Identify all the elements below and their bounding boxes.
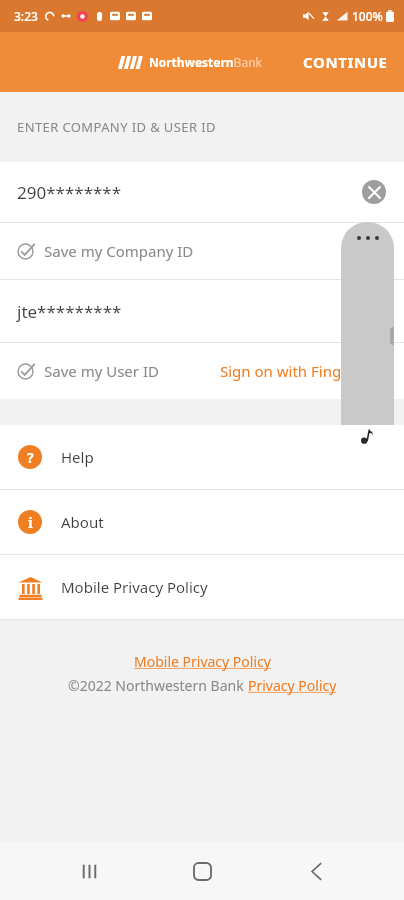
button[interactable]: i: [0, 490, 404, 554]
button[interactable]: Privacy Policy: [248, 676, 337, 695]
button[interactable]: Edge panel handle: [341, 222, 394, 425]
button[interactable]: Home: [177, 846, 227, 896]
staticText: ©2022 Northwestern Bank: [68, 676, 248, 695]
button[interactable]: Mobile Privacy Policy: [0, 555, 404, 619]
button[interactable]: Mobile Privacy Policy: [126, 650, 279, 673]
staticText: Mobile Privacy Policy: [61, 577, 208, 597]
staticText: NorthwesternBank: [149, 54, 262, 70]
button[interactable]: Save my Company ID: [0, 233, 206, 269]
staticText: About: [61, 512, 104, 532]
staticText: Save my Company ID: [44, 241, 194, 261]
staticText: Sign on with Fingerprint: [220, 361, 390, 381]
staticText: jte*********: [17, 300, 122, 323]
staticText: ENTER COMPANY ID & USER ID: [17, 118, 216, 136]
staticText: Save my User ID: [44, 361, 159, 381]
button[interactable]: Recents: [64, 846, 114, 896]
staticText: i: [28, 513, 33, 532]
button[interactable]: jte*********: [0, 280, 404, 342]
staticText: 100%: [352, 8, 383, 24]
staticText: 290********: [17, 181, 122, 204]
button[interactable]: Back: [291, 846, 341, 896]
staticText: Mobile Privacy Policy: [134, 652, 271, 671]
button[interactable]: Clear company ID: [362, 180, 386, 204]
button[interactable]: Save my User ID: [0, 353, 167, 389]
staticText: CONTINUE: [303, 52, 388, 72]
staticText: ?: [27, 448, 34, 467]
button[interactable]: Music shortcut: [341, 405, 394, 455]
staticText: Help: [61, 447, 94, 467]
button[interactable]: Sign on with Fingerprint: [206, 351, 404, 391]
staticText: Privacy Policy: [248, 676, 337, 695]
button[interactable]: ?: [0, 425, 404, 489]
staticText: 3:23: [14, 8, 38, 24]
button[interactable]: 290********: [0, 162, 404, 222]
button[interactable]: CONTINUE: [287, 38, 404, 86]
